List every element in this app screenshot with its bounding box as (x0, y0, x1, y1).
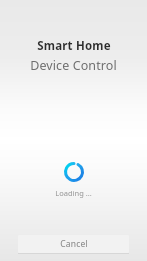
staticText: Smart Home (37, 38, 111, 54)
staticText: Loading ... (55, 188, 92, 198)
staticText: Device Control (30, 57, 117, 74)
other: Loading indicator (64, 162, 84, 182)
button[interactable]: Cancel (18, 235, 129, 253)
staticText: Cancel (60, 238, 88, 250)
